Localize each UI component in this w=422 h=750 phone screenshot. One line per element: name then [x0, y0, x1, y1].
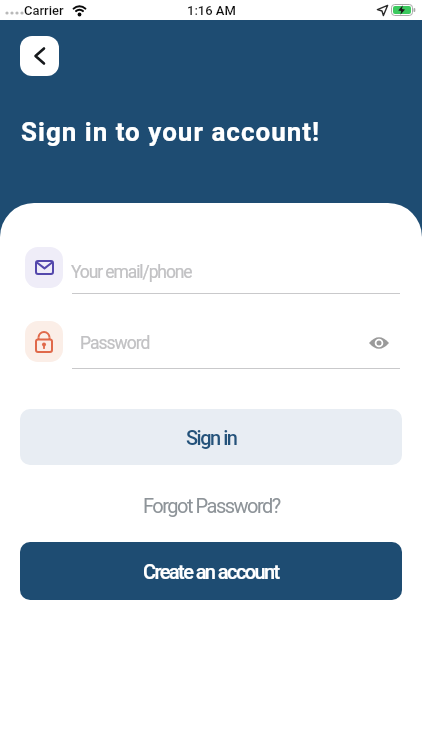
staticText: Carrier	[24, 3, 64, 18]
staticText: 1:16 AM	[187, 3, 236, 18]
staticText: Sign in	[186, 426, 237, 449]
staticText: Forgot Password?	[143, 494, 280, 517]
staticText: Sign in to your account!	[21, 117, 321, 147]
button[interactable]: Forgot Password?	[0, 491, 422, 519]
button[interactable]	[365, 329, 393, 357]
button[interactable]	[20, 36, 59, 76]
button[interactable]: Create an account	[20, 542, 402, 600]
button[interactable]: Password	[80, 333, 150, 354]
button[interactable]: Sign in	[20, 409, 402, 465]
staticText: Create an account	[143, 560, 279, 583]
button[interactable]: Your email/phone	[71, 262, 192, 283]
